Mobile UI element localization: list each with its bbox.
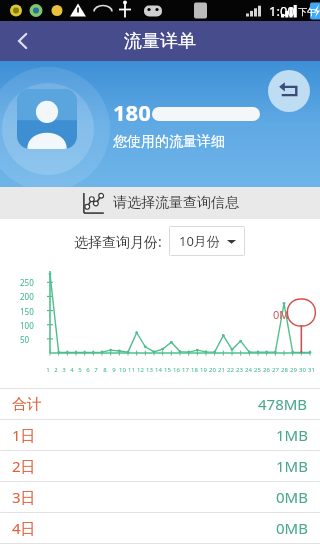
staticText: 180 xyxy=(113,97,151,127)
staticText: 10月份 xyxy=(179,232,220,250)
staticText: 1MB xyxy=(276,425,308,445)
staticText: 21 xyxy=(218,366,225,374)
staticText: 6 xyxy=(86,366,90,374)
staticText: 20 xyxy=(209,366,216,374)
staticText: 3 xyxy=(62,366,66,374)
staticText: 您使用的流量详细 xyxy=(113,133,225,151)
staticText: 15 xyxy=(164,366,171,374)
staticText: 18 xyxy=(191,366,198,374)
staticText: 9 xyxy=(112,366,116,374)
staticText: 10 xyxy=(119,366,126,374)
staticText: 0MB xyxy=(276,518,308,538)
staticText: 22 xyxy=(227,366,234,374)
staticText: 50 xyxy=(20,334,30,345)
button[interactable]: Back xyxy=(0,21,46,61)
staticText: 0MB xyxy=(276,487,308,507)
staticText: 8 xyxy=(103,366,107,374)
staticText: 1:00 xyxy=(269,2,295,20)
staticText: 27 xyxy=(272,366,279,374)
staticText: 17 xyxy=(182,366,189,374)
button[interactable]: 4日 xyxy=(0,513,320,543)
staticText: 150 xyxy=(20,306,34,317)
staticText: 4日 xyxy=(12,518,36,538)
staticText: 0M xyxy=(273,307,290,322)
staticText: 选择查询月份: xyxy=(74,232,162,251)
staticText: 12 xyxy=(137,366,144,374)
staticText: 1 xyxy=(46,366,50,374)
staticText: 250 xyxy=(20,277,34,288)
button[interactable]: 10月份 xyxy=(169,226,245,256)
button[interactable]: 合计 xyxy=(0,389,320,419)
staticText: 13 xyxy=(146,366,153,374)
staticText: 合计 xyxy=(12,395,42,414)
staticText: 29 xyxy=(290,366,297,374)
staticText: 30 xyxy=(299,366,306,374)
staticText: 26 xyxy=(263,366,270,374)
button[interactable]: 1日 xyxy=(0,420,320,450)
staticText: 19 xyxy=(200,366,207,374)
staticText: 11 xyxy=(128,366,135,374)
staticText: 3日 xyxy=(12,487,36,507)
staticText: 2日 xyxy=(12,456,36,476)
staticText: 23 xyxy=(236,366,243,374)
staticText: 16 xyxy=(173,366,180,374)
staticText: 下午 xyxy=(298,6,316,17)
staticText: 2 xyxy=(54,366,58,374)
staticText: 1日 xyxy=(12,425,36,445)
staticText: 14 xyxy=(155,366,162,374)
button[interactable]: Return xyxy=(268,70,310,112)
staticText: 200 xyxy=(20,291,34,302)
staticText: 7 xyxy=(94,366,98,374)
staticText: 请选择流量查询信息 xyxy=(113,194,239,212)
staticText: 478MB xyxy=(258,394,308,414)
staticText: 4 xyxy=(70,366,74,374)
staticText: 24 xyxy=(245,366,252,374)
staticText: 1MB xyxy=(276,456,308,476)
button[interactable]: 2日 xyxy=(0,451,320,481)
staticText: 100 xyxy=(20,320,34,331)
staticText: 31 xyxy=(308,366,315,374)
staticText: 流量详单 xyxy=(124,30,196,53)
button[interactable]: 3日 xyxy=(0,482,320,512)
staticText: 5 xyxy=(78,366,82,374)
staticText: 25 xyxy=(254,366,261,374)
staticText: 28 xyxy=(281,366,288,374)
